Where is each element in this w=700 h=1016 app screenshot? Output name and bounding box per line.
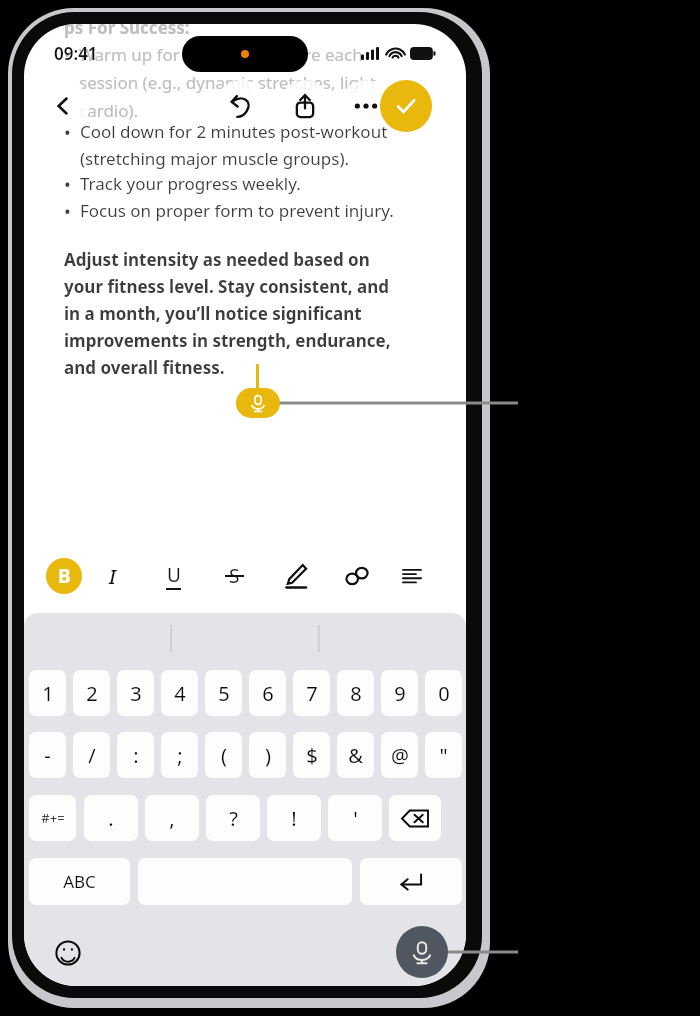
button[interactable]: 2 (73, 670, 110, 716)
staticText: ) (265, 742, 271, 769)
staticText: - (44, 742, 51, 769)
staticText: B (58, 563, 71, 589)
staticText: Adjust intensity as needed based on your… (64, 248, 391, 379)
staticText: @ (391, 742, 409, 769)
button[interactable]: ; (161, 732, 198, 778)
button[interactable]: 3 (117, 670, 154, 716)
staticText: 3 (130, 680, 142, 707)
button[interactable]: Bold (46, 558, 82, 594)
button[interactable]: 1 (29, 670, 66, 716)
button[interactable]: Back (37, 80, 89, 132)
staticText: ( (221, 742, 227, 769)
staticText: $ (306, 742, 318, 769)
button[interactable]: / (73, 732, 110, 778)
button[interactable]: ) (249, 732, 286, 778)
button[interactable]: Underline (143, 549, 204, 603)
staticText: ABC (63, 870, 96, 893)
button[interactable]: Backspace (389, 795, 441, 841)
button[interactable]: @ (381, 732, 418, 778)
button[interactable]: : (117, 732, 154, 778)
staticText: ! (291, 805, 297, 832)
staticText: " (439, 742, 448, 769)
staticText: 7 (306, 680, 318, 707)
staticText: : (133, 742, 139, 769)
staticText: / (88, 742, 96, 769)
button[interactable]: . (84, 795, 138, 841)
staticText: • (64, 120, 71, 145)
button[interactable]: Emoji (48, 933, 88, 973)
button[interactable]: Share (279, 80, 331, 132)
button[interactable]: Dictate (236, 388, 280, 418)
button[interactable]: 4 (161, 670, 198, 716)
staticText: 1 (42, 680, 54, 707)
button[interactable]: & (337, 732, 374, 778)
staticText: 2 (86, 680, 98, 707)
button[interactable]: Voice input (396, 926, 448, 978)
button[interactable]: Done (380, 80, 432, 132)
button[interactable]: 8 (337, 670, 374, 716)
button[interactable]: More options (340, 80, 392, 132)
staticText: 9 (394, 680, 406, 707)
staticText: . (108, 805, 114, 832)
staticText: 4 (174, 680, 186, 707)
staticText: 8 (350, 680, 362, 707)
button[interactable]: ! (267, 795, 321, 841)
button[interactable]: #+= (29, 795, 76, 841)
button[interactable]: - (29, 732, 66, 778)
staticText: ? (229, 805, 238, 832)
staticText: I (109, 563, 116, 590)
button[interactable]: ' (328, 795, 382, 841)
button[interactable]: Return (360, 858, 462, 905)
staticText: • (64, 43, 71, 66)
staticText: 5 (218, 680, 230, 707)
staticText: ps For Success: (64, 24, 190, 39)
button[interactable]: ABC (29, 858, 130, 905)
button[interactable]: ( (205, 732, 242, 778)
staticText: • (64, 172, 71, 197)
button[interactable]: 0 (425, 670, 462, 716)
button[interactable]: 9 (381, 670, 418, 716)
button[interactable]: Undo (215, 80, 267, 132)
staticText: ; (177, 742, 183, 769)
staticText: S (229, 563, 240, 589)
staticText: ' (353, 805, 358, 832)
staticText: 0 (438, 680, 450, 707)
button[interactable]: $ (293, 732, 330, 778)
staticText: • (64, 199, 71, 224)
button[interactable]: Link (326, 549, 387, 603)
staticText: , (169, 805, 175, 832)
button[interactable]: Strikethrough (204, 549, 265, 603)
staticText: Cool down for 2 minutes post-workout (st… (80, 120, 388, 170)
button[interactable]: 5 (205, 670, 242, 716)
button[interactable]: 7 (293, 670, 330, 716)
staticText: U (167, 562, 181, 588)
button[interactable]: Alignment (387, 549, 436, 603)
staticText: Warm up for 5 minutes before each sessio… (79, 43, 376, 122)
staticText: Track your progress weekly. (80, 172, 301, 195)
staticText: 6 (262, 680, 274, 707)
button[interactable]: " (425, 732, 462, 778)
staticText: #+= (41, 809, 65, 827)
button[interactable]: Highlight (265, 549, 326, 603)
staticText: & (348, 742, 363, 769)
button[interactable]: , (145, 795, 199, 841)
staticText: Focus on proper form to prevent injury. (80, 199, 394, 222)
button[interactable]: ? (206, 795, 260, 841)
staticText: 09:41 (54, 42, 98, 65)
button[interactable]: Italic (82, 549, 143, 603)
button[interactable]: 6 (249, 670, 286, 716)
